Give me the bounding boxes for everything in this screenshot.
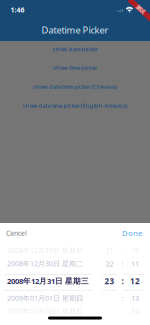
staticText: 2008年12月30日 星期二 <box>7 259 83 268</box>
staticText: 13 <box>131 293 139 303</box>
staticText: Cancel <box>6 228 27 238</box>
staticText: 14 <box>131 306 139 316</box>
staticText: 测试 <box>135 6 145 13</box>
staticText: 23 <box>104 275 114 287</box>
staticText: show time picker <box>53 64 97 71</box>
staticText: : <box>121 293 123 303</box>
button[interactable]: show date time picker (Chinese) <box>0 77 150 95</box>
staticText: Datetime Picker <box>41 24 108 36</box>
button[interactable]: show date picker <box>0 40 150 58</box>
button[interactable]: show date time picker (English-America) <box>0 96 150 114</box>
staticText: 1:46 <box>10 5 24 14</box>
staticText: 2009年01月01日 星期四 <box>7 293 83 303</box>
staticText: 22 <box>105 258 113 269</box>
staticText: : <box>121 306 123 316</box>
staticText: : <box>121 275 123 287</box>
staticText: 11 <box>131 258 139 269</box>
staticText: show date picker <box>52 45 97 53</box>
button[interactable]: Cancel <box>6 225 38 241</box>
staticText: 21 <box>105 246 113 255</box>
staticText: Done <box>122 228 142 238</box>
staticText: 12 <box>130 275 140 287</box>
button[interactable]: show time picker <box>0 58 150 76</box>
staticText: 2009年01月02日 星期五 <box>7 307 83 315</box>
staticText: 2008年12月29日 星期日 <box>7 246 83 255</box>
staticText: 2008年12月31日 星期三 <box>7 276 89 286</box>
button[interactable]: Done <box>114 225 142 241</box>
staticText: show date time picker (English-America) <box>22 102 127 109</box>
staticText: : <box>121 258 123 269</box>
staticText: : <box>121 246 123 255</box>
staticText: show date time picker (Chinese) <box>33 83 117 90</box>
staticText: 10 <box>131 246 139 255</box>
